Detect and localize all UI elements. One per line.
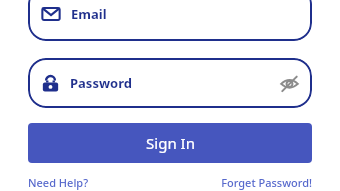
button[interactable]: Password [28, 58, 312, 108]
button[interactable]: Sign In [28, 123, 312, 163]
staticText: Need Help? [28, 175, 89, 190]
button[interactable]: Show password [276, 70, 302, 96]
button[interactable]: Forget Password! [208, 173, 312, 191]
button[interactable]: Email [28, 0, 312, 41]
button[interactable]: Need Help? [28, 173, 89, 191]
staticText: Email [71, 5, 107, 23]
staticText: Forget Password! [221, 175, 312, 190]
staticText: Password [70, 74, 132, 92]
staticText: Sign In [146, 133, 195, 153]
